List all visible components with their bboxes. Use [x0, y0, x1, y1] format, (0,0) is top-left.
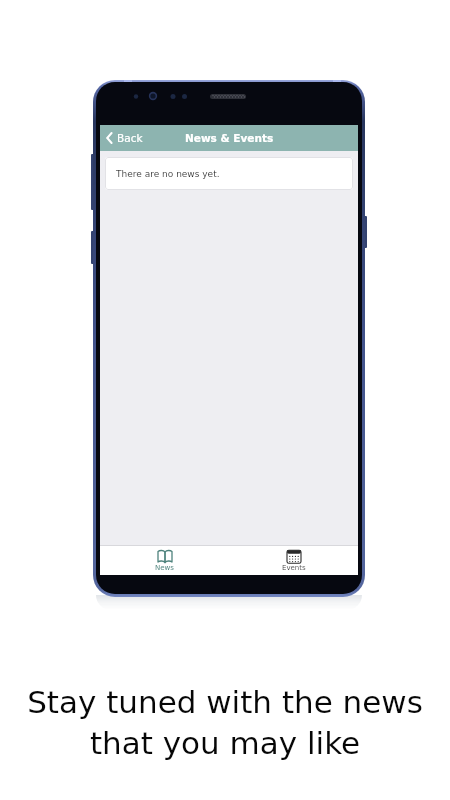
- button[interactable]: News: [100, 546, 229, 575]
- staticText: Back: [117, 132, 143, 144]
- button[interactable]: There are no news yet.: [105, 157, 353, 190]
- staticText: News & Events: [185, 132, 274, 144]
- button[interactable]: Back: [106, 132, 143, 144]
- button[interactable]: Events: [229, 546, 358, 575]
- staticText: News: [155, 564, 174, 572]
- staticText: Stay tuned with the news that you may li…: [0, 684, 450, 762]
- staticText: Events: [282, 564, 306, 572]
- staticText: There are no news yet.: [116, 169, 220, 179]
